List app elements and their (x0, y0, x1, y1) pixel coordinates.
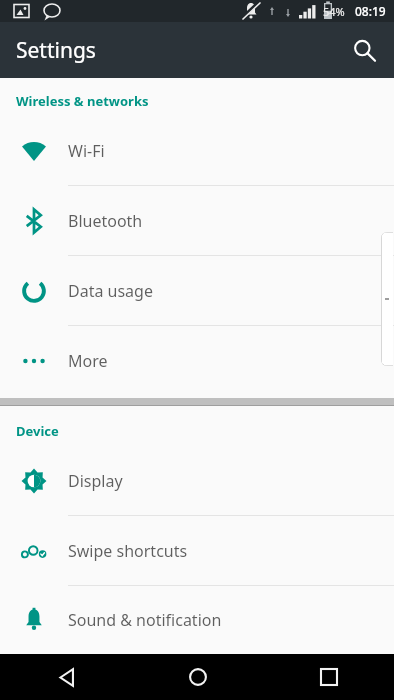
staticText: Device (16, 422, 59, 440)
staticText: Display (68, 470, 123, 492)
staticText: Sound & notification (68, 609, 222, 631)
staticText: Settings (16, 36, 96, 65)
staticText: Wi-Fi (68, 140, 105, 162)
button[interactable]: Sound & notification (0, 586, 394, 654)
staticText: More (68, 350, 108, 372)
button[interactable]: Data usage (0, 256, 394, 326)
staticText: Data usage (68, 280, 153, 302)
staticText: Swipe shortcuts (68, 540, 188, 562)
button[interactable]: Recent apps (263, 669, 394, 685)
staticText: 54% (323, 4, 345, 19)
button[interactable]: Wi-Fi (0, 116, 394, 186)
staticText: Wireless & networks (16, 92, 149, 110)
button[interactable]: More (0, 326, 394, 395)
staticText: 08:19 (355, 3, 386, 19)
staticText: Bluetooth (68, 210, 143, 232)
button[interactable]: Swipe shortcuts (0, 516, 394, 586)
button[interactable]: Search (340, 26, 388, 74)
button[interactable]: Back (0, 668, 132, 687)
button[interactable]: Bluetooth (0, 186, 394, 256)
button[interactable]: Home (132, 668, 263, 686)
button[interactable]: Display (0, 446, 394, 516)
